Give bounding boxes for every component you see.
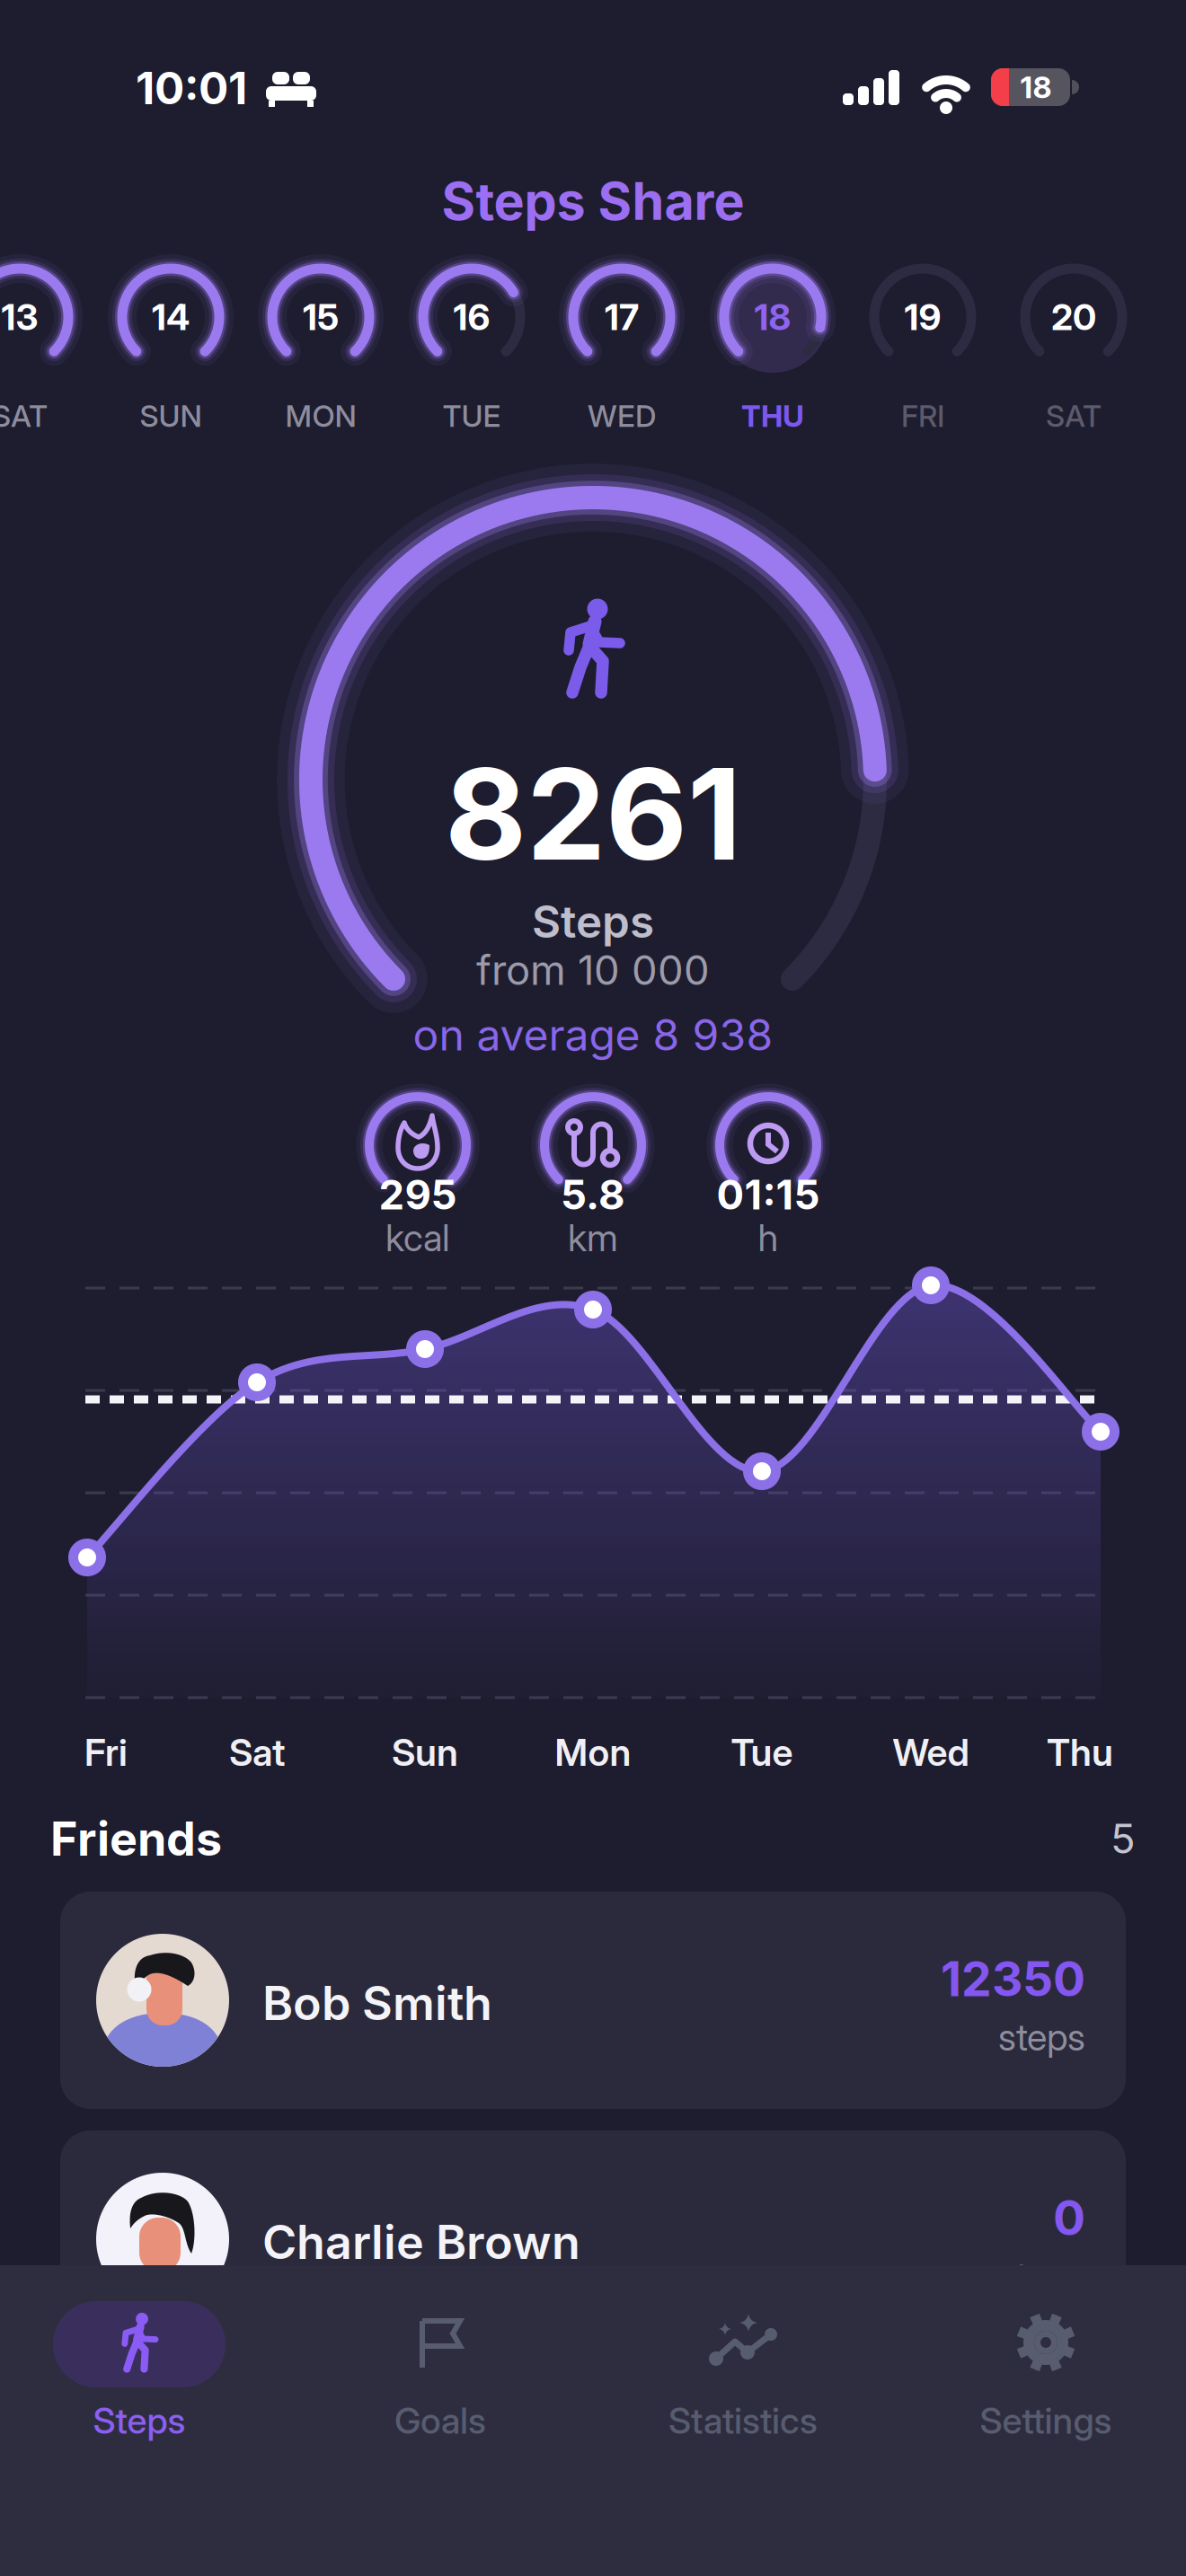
staticText: Steps Share: [442, 171, 744, 232]
staticText: 10:01: [136, 62, 247, 114]
staticText: 14: [152, 296, 190, 338]
staticText: 18: [1020, 69, 1052, 105]
staticText: 295: [379, 1171, 457, 1219]
staticText: kcal: [385, 1216, 450, 1260]
staticText: Wed: [893, 1730, 969, 1774]
staticText: Charlie Brown: [262, 2214, 580, 2269]
staticText: 17: [605, 296, 639, 338]
staticText: Goals: [394, 2399, 486, 2442]
button[interactable]: 17: [550, 235, 694, 460]
staticText: 5: [1111, 1815, 1136, 1863]
staticText: 0: [1053, 2189, 1085, 2246]
staticText: on average 8 938: [413, 1009, 773, 1060]
staticText: Thu: [1047, 1730, 1113, 1774]
staticText: MON: [285, 398, 356, 433]
staticText: Sun: [392, 1730, 458, 1774]
staticText: WED: [588, 398, 656, 433]
staticText: 19: [904, 296, 941, 338]
staticText: 15: [303, 296, 339, 338]
staticText: Statistics: [668, 2399, 818, 2442]
staticText: SUN: [140, 398, 202, 433]
staticText: 5.8: [561, 1171, 625, 1219]
staticText: from 10 000: [476, 946, 710, 994]
button[interactable]: Steps: [22, 2263, 256, 2470]
staticText: h: [758, 1216, 779, 1260]
staticText: Tue: [731, 1730, 793, 1774]
staticText: SAT: [0, 398, 48, 433]
button[interactable]: Bob Smith: [60, 1892, 1126, 2109]
staticText: Fri: [84, 1730, 128, 1774]
staticText: Friends: [50, 1811, 222, 1866]
button[interactable]: 20: [1002, 235, 1146, 460]
staticText: SAT: [1046, 398, 1102, 433]
staticText: 12350: [941, 1950, 1085, 2007]
button[interactable]: 19: [851, 235, 995, 460]
staticText: steps: [998, 2015, 1085, 2059]
staticText: 13: [1, 296, 38, 338]
staticText: TUE: [443, 398, 501, 433]
staticText: Steps: [93, 2399, 186, 2442]
button[interactable]: 18: [701, 235, 845, 460]
staticText: Sat: [229, 1730, 285, 1774]
button[interactable]: Goals: [305, 2263, 575, 2470]
staticText: 8261: [445, 740, 741, 888]
button[interactable]: 15: [249, 235, 393, 460]
button[interactable]: 13: [0, 235, 92, 460]
staticText: 01:15: [717, 1171, 820, 1219]
staticText: 16: [453, 296, 490, 338]
staticText: km: [568, 1216, 618, 1260]
staticText: Bob Smith: [262, 1975, 492, 2030]
staticText: Steps: [532, 895, 654, 948]
button[interactable]: 14: [99, 235, 243, 460]
staticText: FRI: [901, 398, 944, 433]
button[interactable]: Statistics: [608, 2263, 878, 2470]
button[interactable]: 16: [400, 235, 544, 460]
staticText: Settings: [980, 2399, 1112, 2442]
staticText: 18: [754, 296, 791, 338]
button[interactable]: Settings: [911, 2263, 1181, 2470]
staticText: THU: [741, 398, 804, 433]
button[interactable]: Charlie Brown: [60, 2130, 1126, 2348]
staticText: 20: [1051, 296, 1096, 338]
staticText: Mon: [555, 1730, 631, 1774]
